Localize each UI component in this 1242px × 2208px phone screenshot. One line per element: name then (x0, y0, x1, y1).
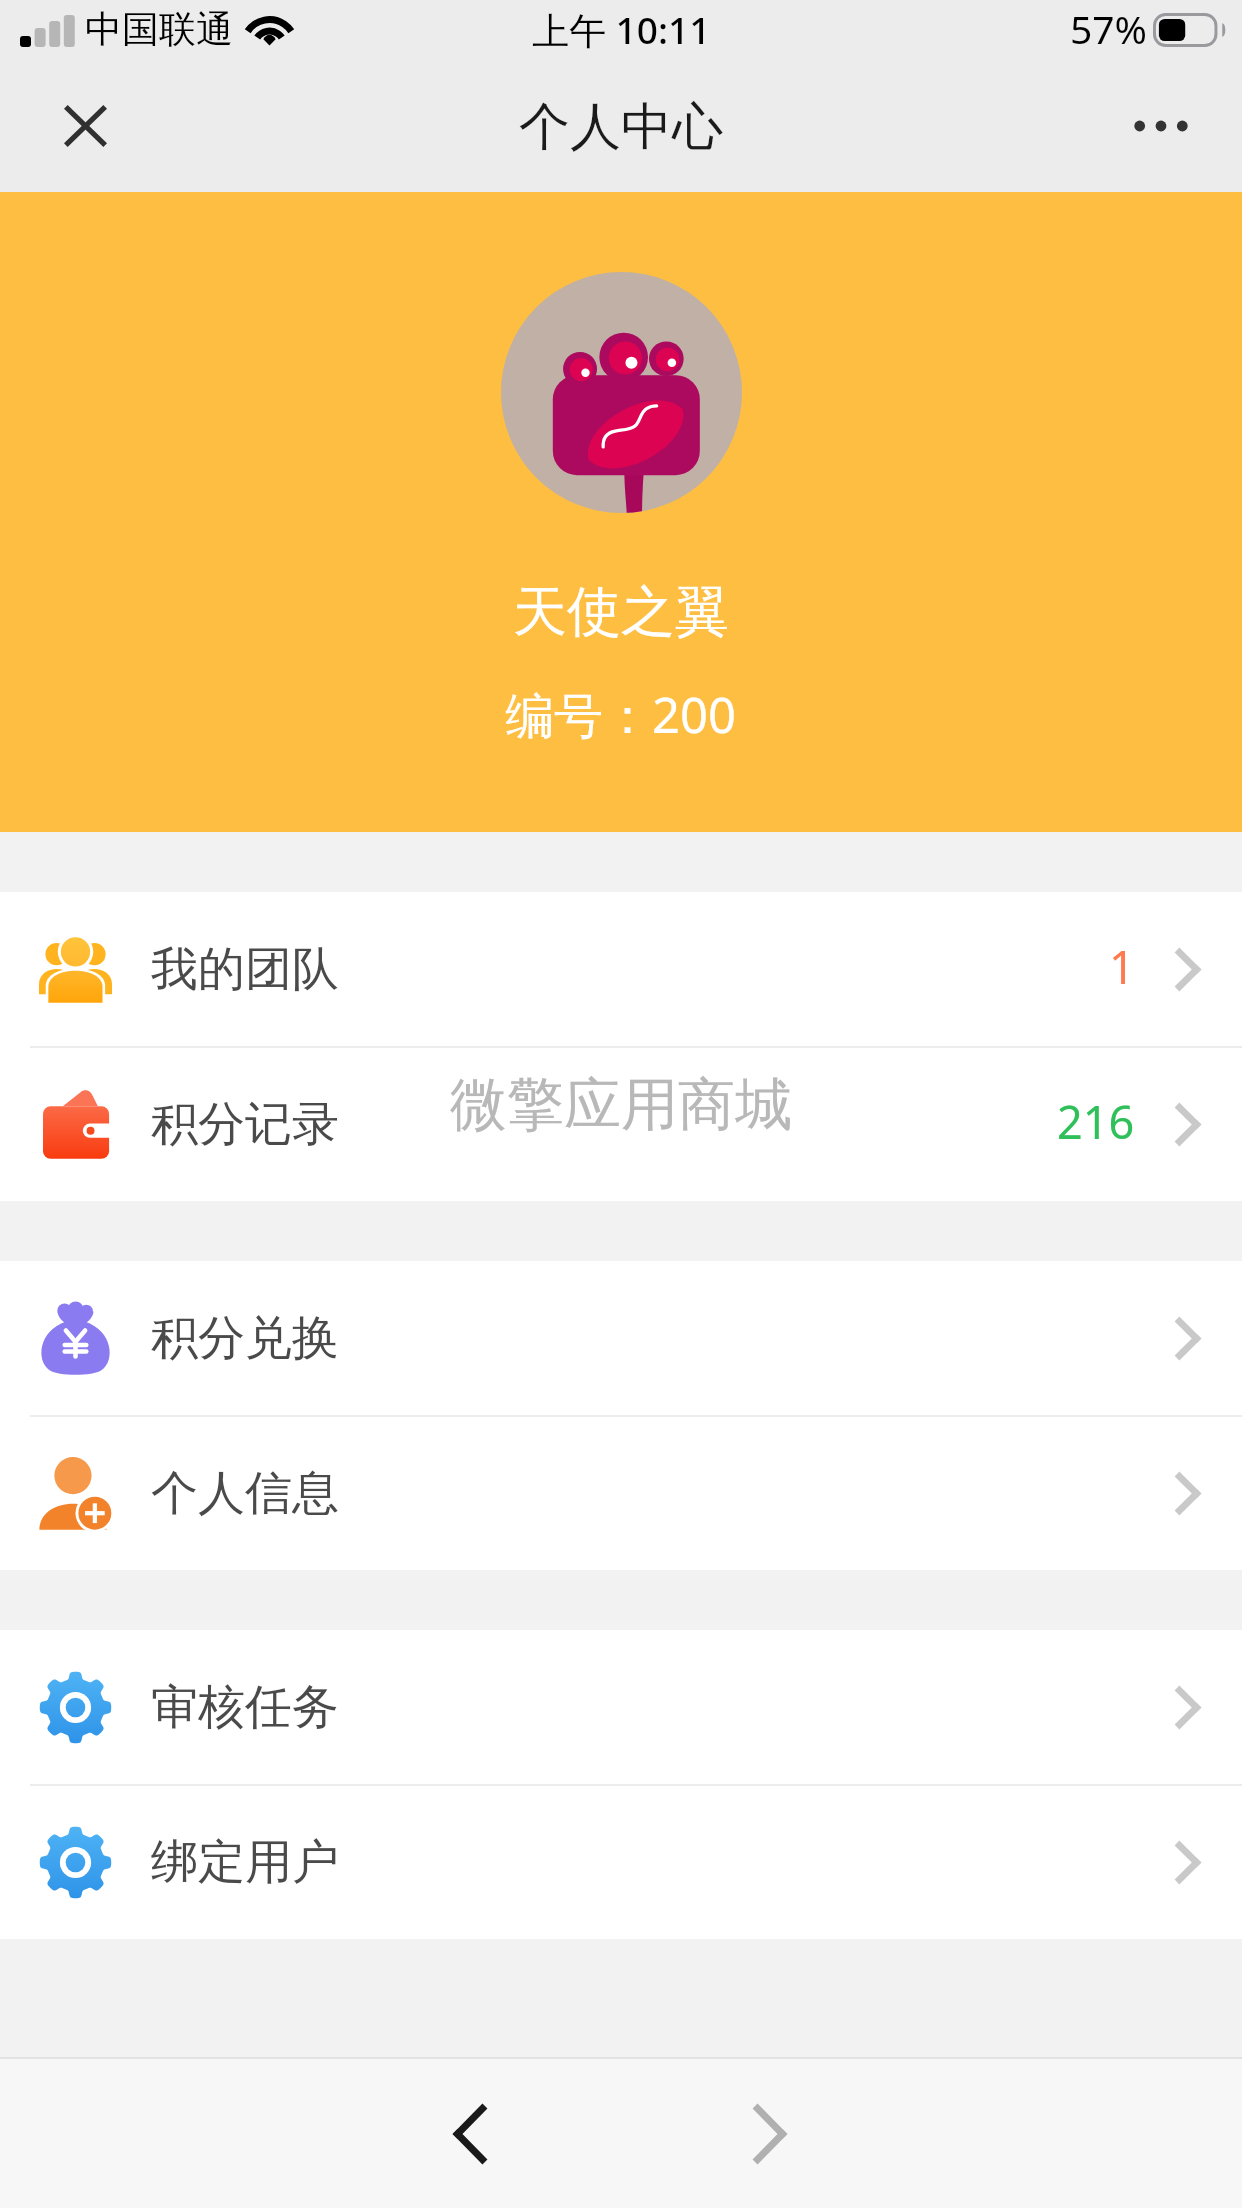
button[interactable]: 审核任务 (0, 1630, 1242, 1786)
staticText: 个人中心 (519, 95, 723, 159)
staticText: 上午 10:11 (532, 4, 711, 55)
staticText: 57% (1070, 2, 1148, 55)
staticText: 积分兑换 (151, 1309, 339, 1368)
button[interactable]: Forward (715, 2079, 825, 2189)
button[interactable]: 绑定用户 (0, 1786, 1242, 1939)
staticText: 216 (1057, 1091, 1135, 1152)
button[interactable]: Close (40, 76, 130, 176)
staticText: 1 (1109, 936, 1135, 997)
staticText: 中国联通 (85, 6, 233, 53)
staticText: 天使之翼 (513, 578, 729, 646)
button[interactable]: 我的团队 (0, 892, 1242, 1048)
staticText: 绑定用户 (151, 1833, 339, 1892)
button[interactable]: Back (415, 2079, 525, 2189)
staticText: 我的团队 (151, 940, 339, 999)
staticText: 个人信息 (151, 1464, 339, 1523)
staticText: 编号：200 (505, 681, 737, 748)
staticText: 微擎应用商城 (450, 1069, 792, 1141)
button[interactable]: 微擎应用商城 (0, 1048, 1242, 1201)
staticText: 积分记录 (151, 1095, 339, 1154)
button[interactable]: 积分兑换 (0, 1261, 1242, 1417)
button[interactable]: More options (1116, 75, 1206, 175)
button[interactable]: 个人信息 (0, 1417, 1242, 1570)
staticText: 审核任务 (151, 1678, 339, 1737)
